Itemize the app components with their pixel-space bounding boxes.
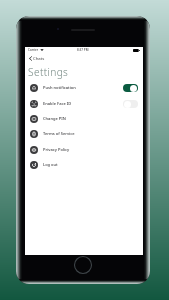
button[interactable]: Change PIN bbox=[25, 111, 143, 126]
staticText: Push notification bbox=[43, 85, 76, 90]
staticText: Log out bbox=[43, 162, 58, 167]
button[interactable]: Enabled bbox=[123, 84, 138, 92]
staticText: Privacy Policy bbox=[43, 147, 70, 152]
staticText: Chats bbox=[33, 55, 45, 61]
staticText: Change PIN bbox=[43, 116, 66, 121]
button[interactable]: Disabled bbox=[123, 100, 138, 108]
staticText: Settings bbox=[28, 65, 69, 79]
staticText: Enable Face ID bbox=[43, 101, 72, 106]
staticText: Carrier bbox=[28, 48, 39, 52]
button[interactable]: Log out bbox=[25, 157, 143, 172]
staticText: Terms of Service bbox=[43, 131, 75, 136]
button[interactable]: Terms of Service bbox=[25, 126, 143, 141]
button[interactable]: Chats bbox=[28, 54, 46, 62]
button[interactable]: Push notification bbox=[25, 80, 143, 95]
staticText: 8:37 PM bbox=[77, 48, 89, 52]
button[interactable]: Enable Face ID bbox=[25, 96, 143, 111]
button[interactable]: Privacy Policy bbox=[25, 142, 143, 157]
